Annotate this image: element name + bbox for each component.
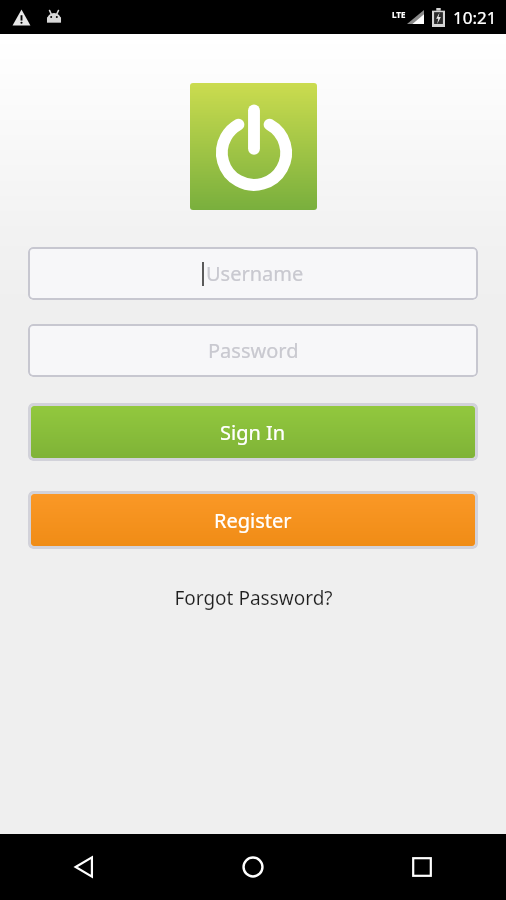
button[interactable]: Back xyxy=(0,834,168,900)
staticText: Sign In xyxy=(220,419,286,446)
button[interactable]: Home xyxy=(168,834,337,900)
button[interactable]: Forgot Password? xyxy=(164,581,343,615)
button[interactable]: Password xyxy=(28,324,478,377)
staticText: LTE xyxy=(392,9,406,20)
button[interactable]: Username xyxy=(28,247,478,300)
button[interactable]: Sign In xyxy=(31,406,475,458)
staticText: Register xyxy=(214,507,292,534)
button[interactable]: Recent apps xyxy=(337,834,506,900)
staticText: 10:21 xyxy=(453,6,497,29)
button[interactable]: Register xyxy=(31,494,475,546)
staticText: Username xyxy=(206,260,304,287)
button[interactable]: App logo xyxy=(190,83,317,210)
staticText: Forgot Password? xyxy=(174,585,333,611)
staticText: Password xyxy=(208,337,299,364)
